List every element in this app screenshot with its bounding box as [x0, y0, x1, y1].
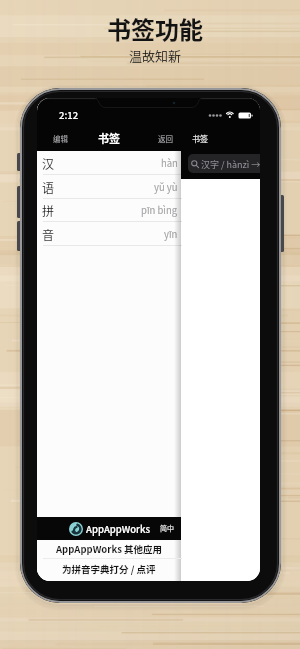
staticText: 2:12	[59, 108, 79, 122]
button[interactable]: 拼	[37, 198, 181, 222]
staticText: yīn	[164, 227, 178, 241]
staticText: 音	[42, 226, 55, 243]
staticText: pīn bìng	[141, 203, 178, 217]
button[interactable]: 为拼音字典打分 / 点评	[37, 559, 181, 579]
button[interactable]: 汉	[37, 151, 181, 175]
staticText: AppAppWorks 其他应用	[56, 542, 163, 556]
button[interactable]	[37, 517, 181, 540]
staticText: hàn	[161, 156, 178, 170]
button[interactable]: 语	[37, 175, 181, 199]
staticText: yǔ yù	[154, 180, 178, 194]
staticText: 书签	[192, 133, 208, 145]
staticText: 书签	[98, 130, 120, 146]
staticText: AppAppWorks	[86, 522, 151, 536]
button[interactable]	[188, 154, 260, 173]
button[interactable]: 编辑	[53, 131, 83, 146]
staticText: 编辑	[53, 133, 68, 144]
staticText: 拼	[42, 202, 55, 219]
staticText: 温故知新	[129, 46, 182, 65]
button[interactable]: 返回	[139, 131, 173, 146]
staticText: 简中	[160, 523, 174, 533]
staticText: 为拼音字典打分 / 点评	[62, 562, 156, 576]
staticText: 书签功能	[107, 11, 203, 46]
staticText: 返回	[158, 133, 173, 144]
button[interactable]: 音	[37, 222, 181, 246]
button[interactable]: AppAppWorks 其他应用	[37, 539, 181, 559]
staticText: 汉字 / hànzì →	[201, 158, 260, 171]
staticText: 汉	[42, 155, 55, 172]
staticText: 语	[42, 179, 55, 196]
